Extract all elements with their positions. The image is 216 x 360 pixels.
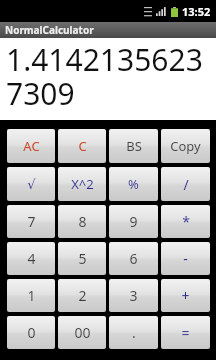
button[interactable]: . xyxy=(109,316,158,349)
staticText: . xyxy=(132,323,136,342)
staticText: 13:52 xyxy=(182,4,211,19)
button[interactable]: BS xyxy=(109,129,158,163)
staticText: / xyxy=(183,175,189,194)
staticText: 1.41421356237309 xyxy=(6,39,216,113)
button[interactable]: = xyxy=(161,316,210,349)
button[interactable]: - xyxy=(161,242,210,275)
staticText: 1 xyxy=(27,286,36,305)
staticText: + xyxy=(181,286,190,305)
staticText: AC xyxy=(23,137,40,155)
staticText: √ xyxy=(27,177,36,192)
button[interactable]: 0 xyxy=(7,316,55,349)
staticText: 6 xyxy=(129,249,138,268)
staticText: BS xyxy=(126,137,142,155)
staticText: 7 xyxy=(27,212,36,231)
button[interactable]: 6 xyxy=(109,242,158,275)
button[interactable]: % xyxy=(109,167,158,201)
staticText: C xyxy=(78,137,87,155)
button[interactable]: / xyxy=(161,167,210,201)
staticText: * xyxy=(182,212,190,231)
button[interactable]: AC xyxy=(7,129,55,163)
button[interactable]: Copy xyxy=(161,129,210,163)
staticText: NormalCalculator xyxy=(5,23,94,37)
staticText: 3 xyxy=(129,286,138,305)
staticText: 4 xyxy=(27,249,36,268)
button[interactable]: 7 xyxy=(7,205,55,238)
staticText: = xyxy=(181,323,190,342)
staticText: - xyxy=(183,249,188,268)
button[interactable]: 00 xyxy=(58,316,106,349)
button[interactable]: 8 xyxy=(58,205,106,238)
button[interactable]: * xyxy=(161,205,210,238)
button[interactable]: 3 xyxy=(109,279,158,312)
staticText: 00 xyxy=(74,323,91,342)
button[interactable]: 1 xyxy=(7,279,55,312)
button[interactable]: 2 xyxy=(58,279,106,312)
staticText: % xyxy=(128,175,139,193)
staticText: 2 xyxy=(78,286,87,305)
staticText: 0 xyxy=(27,323,36,342)
staticText: 8 xyxy=(78,212,87,231)
button[interactable]: √ xyxy=(7,167,55,201)
staticText: 5 xyxy=(78,249,87,268)
button[interactable]: C xyxy=(58,129,106,163)
button[interactable]: + xyxy=(161,279,210,312)
button[interactable]: 9 xyxy=(109,205,158,238)
button[interactable]: 4 xyxy=(7,242,55,275)
staticText: Copy xyxy=(170,137,201,155)
staticText: X^2 xyxy=(71,175,94,193)
button[interactable]: X^2 xyxy=(58,167,106,201)
button[interactable]: 5 xyxy=(58,242,106,275)
staticText: 9 xyxy=(129,212,138,231)
